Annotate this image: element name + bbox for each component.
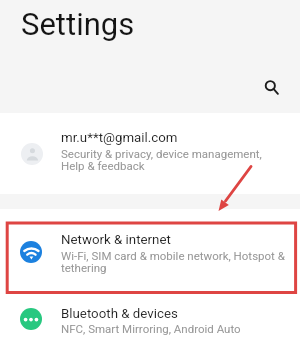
button[interactable]: Search — [258, 74, 282, 98]
staticText: NFC, Smart Mirroring, Android Auto — [61, 322, 241, 335]
button[interactable]: mr.u**t@gmail.com — [0, 113, 300, 194]
staticText: mr.u**t@gmail.com — [61, 130, 178, 146]
staticText: Bluetooth & devices — [61, 306, 178, 322]
staticText: Network & internet — [61, 232, 171, 248]
button[interactable]: Bluetooth & devices — [0, 295, 300, 348]
staticText: Wi-Fi, SIM card & mobile network, Hotspo… — [61, 249, 285, 275]
staticText: Security & privacy, device management, H… — [61, 147, 262, 173]
staticText: Settings — [21, 6, 135, 42]
button[interactable]: Network & internet — [0, 209, 300, 295]
